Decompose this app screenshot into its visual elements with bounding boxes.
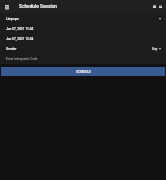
button[interactable]: SCHEDULE	[1, 67, 165, 76]
staticText: Limpopo	[6, 17, 19, 21]
button[interactable]: Enter Interpreter Code	[0, 54, 166, 64]
button[interactable]: Jun 07, 2021 11:34	[0, 24, 166, 34]
button[interactable]: Interpreters	[157, 0, 163, 13]
button[interactable]: Gender	[0, 44, 166, 54]
button[interactable]: Limpopo	[0, 14, 166, 24]
staticText: Jun 07, 2021 11:34	[6, 27, 34, 31]
button[interactable]: History	[151, 0, 157, 13]
staticText: Enter Interpreter Code	[6, 57, 38, 61]
button[interactable]: Navigation menu	[0, 0, 13, 13]
staticText: SCHEDULE	[76, 70, 91, 74]
staticText: Schedule Session	[19, 4, 58, 10]
button[interactable]: Jun 07, 2021 12:34	[0, 34, 166, 44]
staticText: Gender	[6, 47, 17, 51]
staticText: Any	[152, 47, 158, 51]
staticText: Jun 07, 2021 12:34	[6, 37, 34, 41]
